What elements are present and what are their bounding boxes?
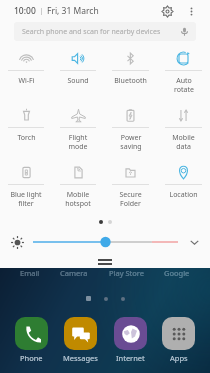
button[interactable]: Internet [114, 317, 147, 363]
staticText: Location [169, 190, 198, 200]
button[interactable]: Mobile data [157, 103, 210, 160]
staticText: Google [164, 268, 190, 278]
button[interactable]: Torch [0, 103, 52, 160]
button[interactable]: Blue light filter [0, 160, 52, 217]
staticText: Camera [60, 268, 88, 278]
button[interactable] [0, 256, 210, 268]
staticText: Phone [20, 353, 43, 363]
button[interactable]: Apps [162, 317, 195, 363]
button[interactable]: Secure Folder [104, 160, 157, 217]
button[interactable]: Phone [15, 317, 48, 363]
button[interactable]: More options [180, 0, 202, 22]
staticText: Email [20, 268, 40, 278]
staticText: Sound [67, 76, 89, 86]
staticText: Auto rotate [174, 76, 194, 94]
staticText: Bluetooth [114, 76, 147, 86]
staticText: Blue light filter [10, 190, 42, 208]
staticText: Mobile data [172, 133, 195, 151]
staticText: Search phone and scan for nearby devices [22, 27, 161, 37]
staticText: Mobile hotspot [65, 190, 91, 208]
staticText: Flight mode [68, 133, 88, 151]
button[interactable]: Flight mode [52, 103, 104, 160]
button[interactable]: Wi-Fi [0, 46, 52, 103]
staticText: Messages [63, 353, 98, 363]
staticText: Secure Folder [119, 190, 142, 208]
button[interactable]: Messages [63, 317, 98, 363]
staticText: Wi-Fi [18, 76, 35, 86]
staticText: 10:00 [14, 5, 36, 17]
staticText: Internet [116, 353, 145, 363]
button[interactable] [33, 235, 178, 249]
button[interactable]: Sound [52, 46, 104, 103]
staticText: Fri, 31 March [47, 5, 99, 17]
button[interactable]: Expand brightness [186, 234, 202, 250]
staticText: Apps [170, 353, 188, 363]
staticText: Torch [17, 133, 36, 143]
button[interactable]: Location [157, 160, 210, 217]
button[interactable]: Mobile hotspot [52, 160, 104, 217]
staticText: Play Store [109, 268, 144, 278]
button[interactable]: Power saving [104, 103, 157, 160]
button[interactable]: Bluetooth [104, 46, 157, 103]
button[interactable]: Search phone and scan for nearby devices [14, 22, 196, 41]
staticText: Power saving [120, 133, 142, 151]
button[interactable]: Auto rotate [157, 46, 210, 103]
button[interactable]: Settings [154, 0, 180, 22]
